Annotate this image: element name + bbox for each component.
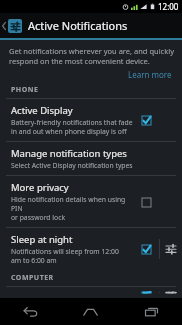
staticText: Get notifications wherever you are, and … [9, 46, 174, 66]
staticText: Active Notifications [28, 18, 128, 33]
staticText: Learn more [128, 69, 172, 80]
staticText: Notifications will sleep from 12:00 am t… [11, 247, 119, 265]
staticText: More privacy [11, 181, 69, 194]
button[interactable]: Home [60, 298, 121, 325]
button[interactable]: Learn more [126, 67, 174, 82]
staticText: Active Display [11, 104, 73, 117]
staticText: COMPUTER [11, 273, 54, 283]
button[interactable]: Settings for Motorola Connect [160, 292, 182, 293]
button[interactable]: Settings for Sleep at night [160, 238, 182, 260]
button[interactable]: Active Display checkbox [133, 109, 159, 131]
button[interactable]: More privacy checkbox [133, 191, 159, 213]
staticText: Sleep at night [11, 233, 73, 246]
staticText: Manage notification types [11, 147, 127, 160]
button[interactable]: Sleep at night checkbox [133, 238, 159, 260]
button[interactable]: Motorola Connect [0, 287, 182, 298]
button[interactable]: Sleep at night [0, 228, 182, 270]
button[interactable]: Manage notification types [0, 142, 182, 175]
button[interactable]: Motorola Connect checkbox [133, 292, 159, 293]
staticText: Select Active Display notification types [11, 161, 133, 170]
button[interactable]: Active Display [0, 99, 182, 141]
staticText: 12:00 [158, 1, 179, 12]
staticText: Hide notification details when using PIN… [11, 195, 133, 222]
button[interactable]: Recent apps [121, 298, 182, 325]
staticText: PHONE [11, 85, 39, 95]
button[interactable]: Navigate up [0, 13, 25, 38]
button[interactable]: More privacy [0, 176, 182, 227]
button[interactable]: Back [0, 298, 60, 325]
staticText: Battery-friendly notifications that fade… [11, 118, 133, 136]
